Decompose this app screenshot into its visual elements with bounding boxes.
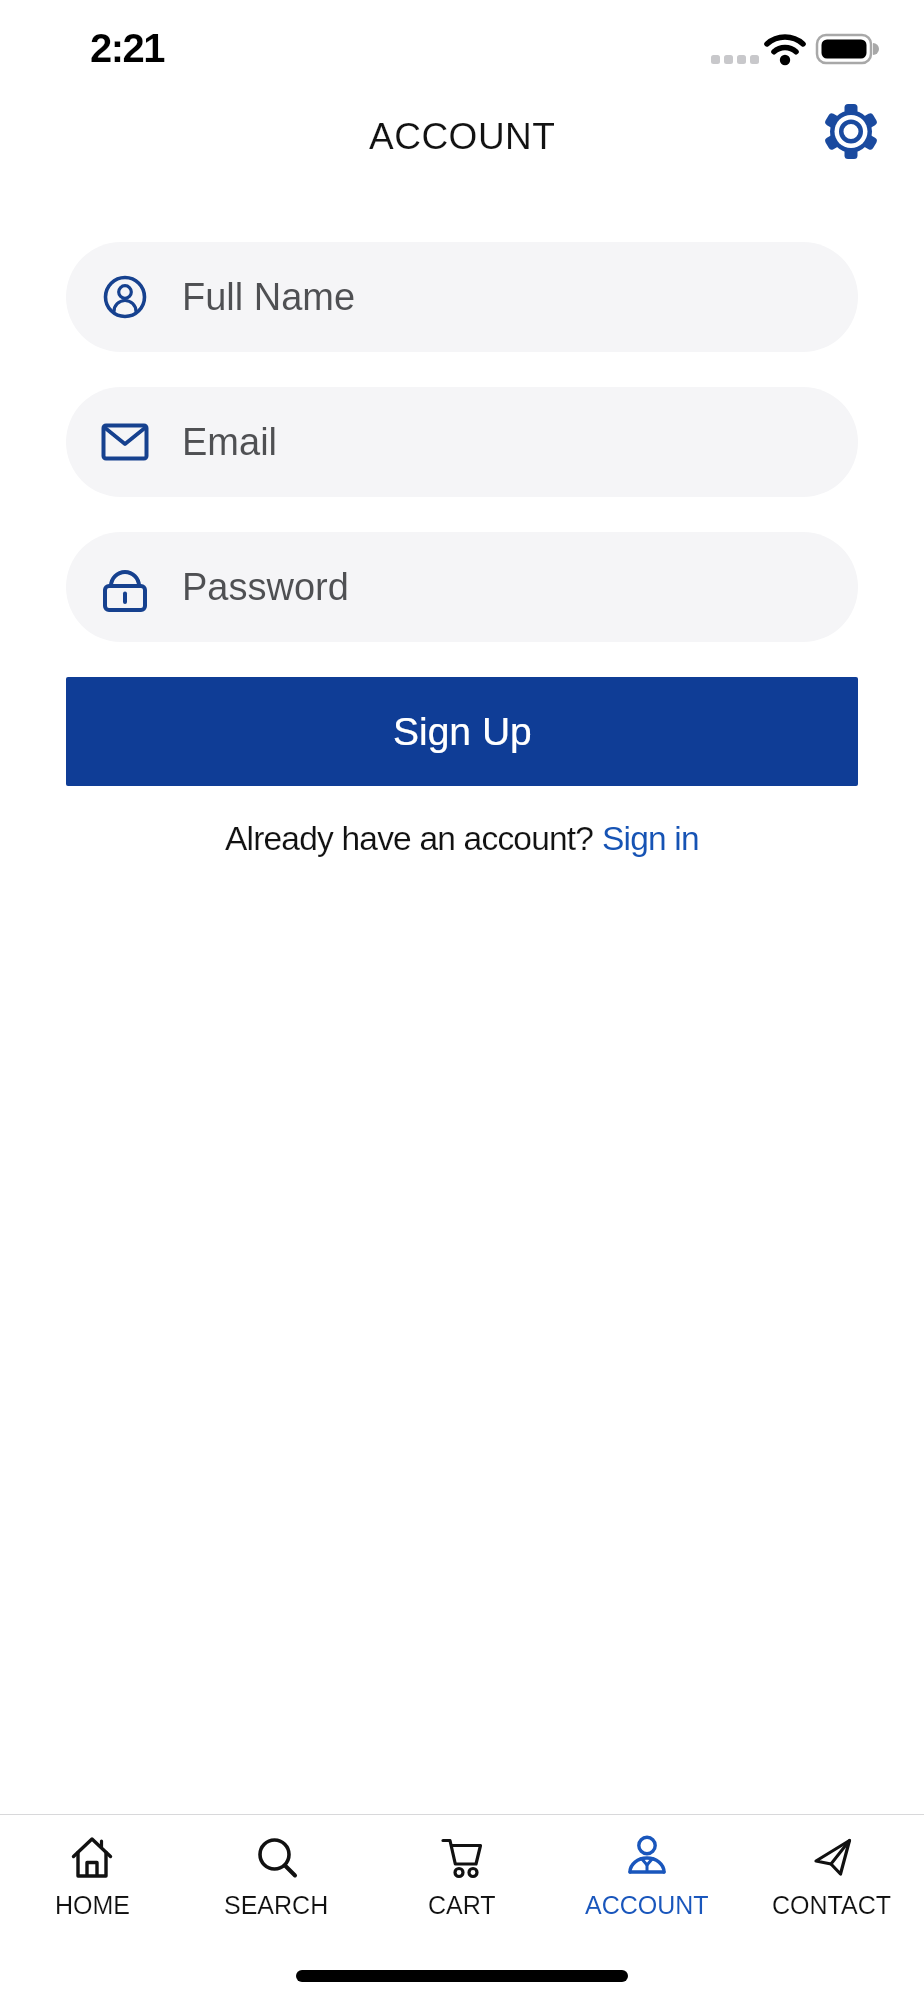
button[interactable]: Password bbox=[66, 532, 858, 642]
button[interactable]: SEARCH bbox=[184, 1815, 369, 1935]
staticText: Password bbox=[182, 566, 349, 608]
staticText: ACCOUNT bbox=[369, 116, 556, 157]
button[interactable]: ACCOUNT bbox=[554, 1815, 739, 1935]
staticText: Email bbox=[182, 421, 278, 463]
staticText: CART bbox=[428, 1891, 496, 1919]
button[interactable]: CONTACT bbox=[739, 1815, 924, 1935]
button[interactable] bbox=[818, 98, 884, 164]
button[interactable]: Email bbox=[66, 387, 858, 497]
button[interactable]: Sign Up bbox=[66, 677, 858, 786]
button[interactable]: CART bbox=[369, 1815, 554, 1935]
staticText: Sign Up bbox=[393, 710, 532, 754]
button[interactable]: HOME bbox=[0, 1815, 184, 1935]
button[interactable]: Sign in bbox=[602, 820, 699, 857]
staticText: 2:21 bbox=[90, 26, 165, 71]
staticText: HOME bbox=[55, 1891, 130, 1919]
staticText: CONTACT bbox=[772, 1891, 891, 1919]
staticText: SEARCH bbox=[224, 1891, 329, 1919]
button[interactable]: Full Name bbox=[66, 242, 858, 352]
staticText: Full Name bbox=[182, 276, 356, 318]
staticText: ACCOUNT bbox=[585, 1891, 709, 1919]
staticText: Already have an account? bbox=[225, 820, 602, 857]
